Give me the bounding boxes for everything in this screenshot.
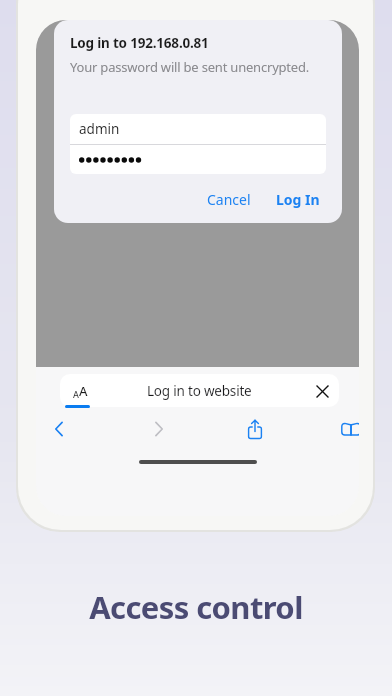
button[interactable]: Text size (69, 378, 92, 404)
staticText: A (73, 388, 79, 400)
button[interactable]: Forward (144, 416, 172, 442)
staticText: Log In (276, 190, 320, 209)
staticText: Your password will be sent unencrypted. (70, 58, 310, 76)
button[interactable]: Share (241, 416, 269, 442)
staticText: A (79, 382, 88, 400)
button[interactable] (60, 374, 339, 407)
button[interactable] (70, 145, 326, 174)
staticText: Access control (0, 586, 392, 628)
staticText: Log in to website (147, 382, 252, 400)
button[interactable]: Bookmarks (337, 416, 359, 442)
button[interactable]: Back (46, 416, 74, 442)
button[interactable]: Log In (270, 186, 326, 213)
staticText: admin (79, 120, 120, 138)
staticText: Log in to 192.168.0.81 (70, 34, 209, 52)
button[interactable]: Cancel (201, 186, 257, 213)
staticText: Cancel (207, 190, 251, 209)
button[interactable]: admin (70, 114, 326, 144)
button[interactable]: Close (311, 380, 333, 402)
